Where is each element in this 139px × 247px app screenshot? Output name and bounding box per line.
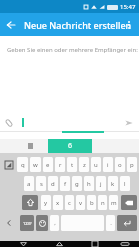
button[interactable]: 6: [48, 139, 92, 153]
button[interactable]: m: [109, 195, 118, 210]
button[interactable]: w: [30, 157, 41, 172]
staticText: l: [124, 180, 126, 188]
staticText: i: [107, 161, 109, 169]
button[interactable]: k: [108, 176, 118, 191]
staticText: x: [56, 199, 60, 207]
button[interactable]: Emoji: [36, 215, 48, 231]
button[interactable]: [12, 139, 48, 153]
staticText: f: [64, 180, 67, 188]
button[interactable]: h: [84, 176, 94, 191]
staticText: g: [75, 180, 79, 188]
button[interactable]: o: [115, 157, 125, 172]
staticText: ,: [54, 219, 56, 227]
button[interactable]: u: [91, 157, 101, 172]
button[interactable]: Eingabe: [117, 215, 137, 231]
staticText: h: [87, 180, 91, 188]
button[interactable]: e: [43, 157, 53, 172]
button[interactable]: i: [103, 157, 113, 172]
button[interactable]: Löschen: [121, 195, 137, 210]
staticText: e: [46, 161, 50, 169]
button[interactable]: Zurück: [14, 241, 32, 247]
button[interactable]: Senden: [120, 114, 137, 131]
staticText: d: [51, 180, 55, 188]
staticText: b: [90, 199, 94, 207]
button[interactable]: Tastatur verkleinern: [0, 156, 17, 173]
staticText: m: [111, 199, 117, 207]
staticText: 6: [68, 141, 73, 151]
button[interactable]: .: [106, 215, 115, 231]
button[interactable]: Zurück: [0, 214, 17, 232]
button[interactable]: Tastatur wechseln: [116, 241, 134, 247]
staticText: w: [33, 161, 38, 169]
staticText: o: [118, 161, 122, 169]
button[interactable]: n: [98, 195, 107, 210]
staticText: y: [44, 199, 48, 207]
staticText: a: [27, 180, 31, 188]
staticText: r: [59, 161, 62, 169]
staticText: s: [40, 180, 43, 188]
staticText: z: [83, 161, 86, 169]
button[interactable]: j: [96, 176, 106, 191]
button[interactable]: p: [127, 157, 137, 172]
button[interactable]: Startbildschirm: [50, 241, 68, 247]
button[interactable]: d: [48, 176, 58, 191]
button[interactable]: Umschalt: [22, 195, 38, 210]
staticText: 15:47: [120, 3, 136, 11]
staticText: .: [110, 219, 112, 227]
staticText: c: [68, 199, 71, 207]
staticText: k: [111, 180, 115, 188]
button[interactable]: s: [36, 176, 46, 191]
button[interactable]: x: [53, 195, 63, 210]
button[interactable]: ,: [50, 215, 59, 231]
button[interactable]: l: [120, 176, 130, 191]
button[interactable]: g: [72, 176, 82, 191]
staticText: t: [71, 161, 74, 169]
button[interactable]: r: [55, 157, 65, 172]
button[interactable]: t: [67, 157, 77, 172]
staticText: u: [94, 161, 98, 169]
button[interactable]: Zurück: [0, 14, 21, 35]
staticText: v: [79, 199, 83, 207]
button[interactable]: Übersicht: [86, 241, 104, 247]
button[interactable]: c: [65, 195, 74, 210]
button[interactable]: z: [79, 157, 89, 172]
staticText: j: [100, 180, 102, 188]
button[interactable]: Symbole: [20, 215, 34, 231]
staticText: Geben Sie einen oder mehrere Empfänger e…: [7, 46, 138, 54]
staticText: 123?: [23, 221, 32, 226]
staticText: q: [21, 161, 25, 169]
button[interactable]: b: [87, 195, 96, 210]
button[interactable]: f: [60, 176, 70, 191]
button[interactable]: Anhang hinzufügen: [0, 114, 17, 131]
button[interactable]: Weitere Optionen: [118, 14, 139, 35]
button[interactable]: y: [41, 195, 51, 210]
button[interactable]: v: [76, 195, 85, 210]
staticText: Neue Nachricht erstellen: [24, 19, 132, 31]
button[interactable]: a: [24, 176, 34, 191]
staticText: n: [101, 199, 105, 207]
button[interactable]: q: [17, 157, 28, 172]
staticText: p: [130, 161, 134, 169]
